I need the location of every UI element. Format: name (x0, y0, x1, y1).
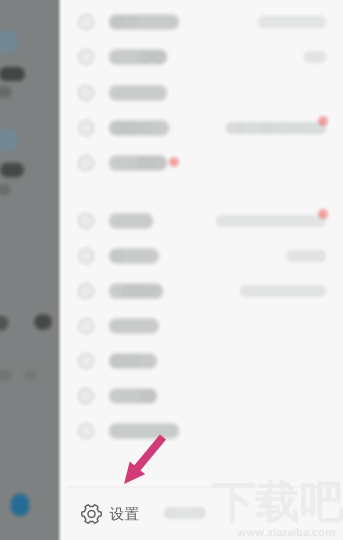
button[interactable]: Menu item (62, 308, 343, 344)
button[interactable]: Menu item (62, 203, 343, 239)
button[interactable]: 设置 (70, 491, 149, 537)
staticText: www.xiazaiba.com (237, 525, 335, 539)
button[interactable]: Menu item (62, 378, 343, 414)
button[interactable]: Menu item (62, 238, 343, 274)
button[interactable]: Menu item (62, 75, 343, 111)
button[interactable]: Menu item (62, 413, 343, 449)
staticText: 下载吧 (211, 476, 343, 530)
button[interactable]: Menu item (62, 4, 343, 40)
button[interactable]: Menu item (62, 145, 343, 181)
staticText: 设置 (109, 505, 139, 523)
button[interactable]: Menu item (62, 39, 343, 75)
button[interactable]: Menu item (62, 110, 343, 146)
button[interactable]: Menu item (62, 343, 343, 379)
button[interactable]: Menu item (62, 273, 343, 309)
